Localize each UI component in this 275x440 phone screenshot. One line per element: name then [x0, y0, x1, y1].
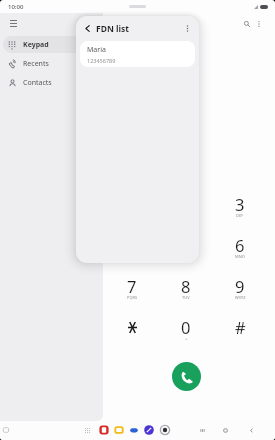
staticText: +	[185, 336, 188, 341]
button[interactable]: Back	[244, 423, 258, 437]
staticText: 6	[235, 234, 245, 256]
staticText: Recents	[23, 59, 49, 69]
button[interactable]: 9	[213, 266, 267, 306]
button[interactable]: Contacts	[3, 74, 100, 91]
button[interactable]: 7	[105, 266, 159, 306]
button[interactable]: 0	[159, 307, 213, 347]
staticText: Contacts	[23, 78, 52, 88]
button[interactable]: More options	[181, 22, 194, 35]
button[interactable]: Home	[218, 423, 232, 437]
button[interactable]: 5	[159, 225, 213, 265]
button[interactable]: 3	[213, 184, 267, 224]
staticText: Maria	[87, 45, 106, 55]
button[interactable]: App	[143, 424, 155, 436]
staticText: 3	[235, 193, 245, 215]
staticText: #	[235, 316, 246, 338]
button[interactable]: 8	[159, 266, 213, 306]
button[interactable]: Search	[239, 16, 255, 32]
button[interactable]: Keypad	[3, 36, 100, 53]
button[interactable]	[105, 307, 159, 347]
button[interactable]: App	[113, 424, 125, 436]
button[interactable]: App	[159, 424, 171, 436]
staticText: 9	[235, 275, 245, 297]
button[interactable]: #	[213, 307, 267, 347]
staticText: FDN list	[96, 23, 130, 35]
staticText: 0	[181, 316, 191, 338]
button[interactable]: All apps	[83, 426, 92, 435]
staticText: 8	[181, 275, 191, 297]
staticText: 7	[127, 275, 137, 297]
button[interactable]: 2	[159, 184, 213, 224]
staticText: TUV	[182, 295, 190, 300]
staticText: 10:00	[8, 3, 24, 11]
staticText: MNO	[235, 254, 245, 259]
button[interactable]: Back	[81, 22, 94, 35]
staticText: PQRS	[127, 295, 138, 300]
button[interactable]: App	[98, 424, 110, 436]
button[interactable]: App	[128, 424, 140, 436]
button[interactable]: Recents	[3, 55, 100, 72]
button[interactable]: More options	[251, 16, 267, 32]
staticText: 123456789	[87, 57, 116, 64]
staticText: DEF	[236, 213, 244, 218]
button[interactable]: Recents	[195, 423, 209, 437]
button[interactable]: 6	[213, 225, 267, 265]
button[interactable]: Menu	[5, 15, 21, 31]
button[interactable]: Notification	[2, 426, 10, 434]
staticText: WXYZ	[235, 295, 246, 300]
staticText: Keypad	[23, 40, 49, 50]
button[interactable]: Call	[172, 362, 201, 391]
button[interactable]: Maria	[80, 41, 195, 67]
